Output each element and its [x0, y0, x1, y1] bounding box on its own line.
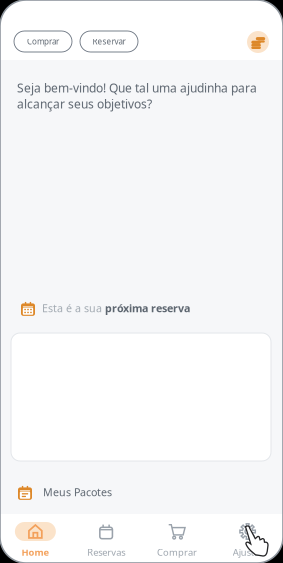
button[interactable]: Reservar	[80, 31, 138, 52]
staticText: Esta é a sua	[42, 301, 105, 315]
staticText: Reservar	[92, 36, 125, 47]
staticText: Meus Pacotes	[43, 485, 112, 499]
staticText: Comprar	[27, 36, 59, 47]
button[interactable]: Meus Pacotes	[18, 485, 112, 499]
button[interactable]: Ajustes	[212, 522, 283, 562]
staticText: Ajustes	[233, 546, 263, 558]
staticText: Home	[21, 546, 49, 558]
button[interactable]: Comprar	[14, 31, 72, 52]
button[interactable]: Saldo de moedas	[247, 31, 269, 53]
staticText: próxima reserva	[105, 301, 190, 315]
staticText: Comprar	[157, 546, 197, 558]
staticText: Reservas	[87, 546, 125, 558]
staticText: Seja bem-vindo! Que tal uma ajudinha par…	[17, 80, 257, 112]
button[interactable]: Comprar	[141, 522, 212, 562]
button[interactable]: Home	[0, 522, 71, 562]
button[interactable]: Reservas	[71, 522, 142, 562]
